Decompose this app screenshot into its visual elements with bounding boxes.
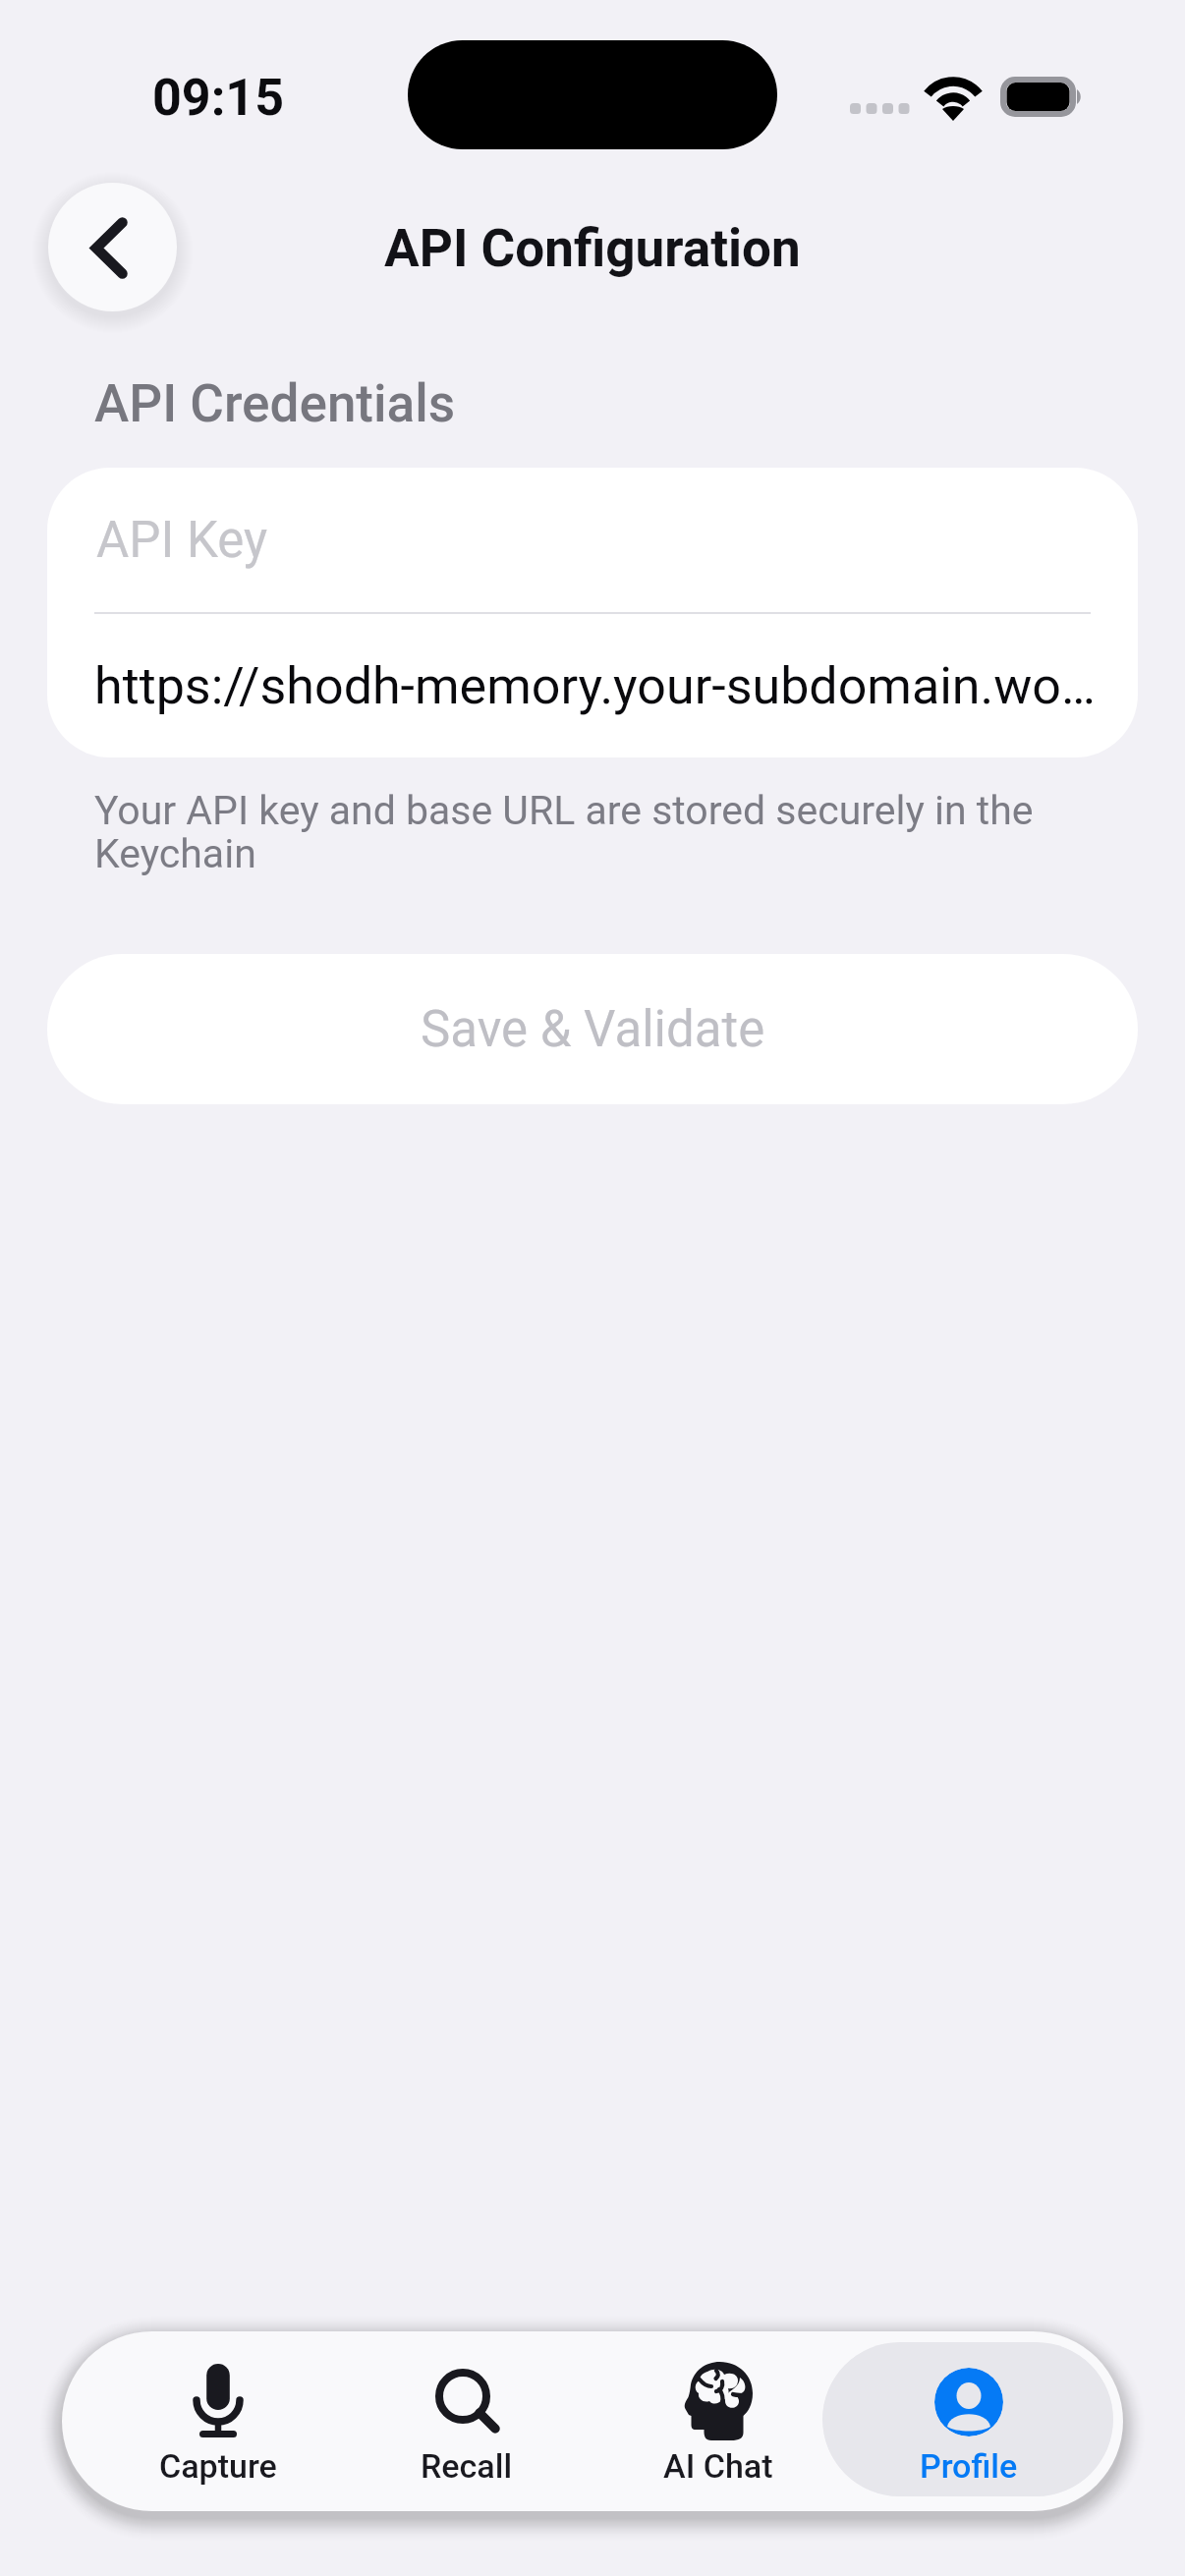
button[interactable]: Recall <box>342 2342 592 2496</box>
staticText: Profile <box>920 2446 1018 2486</box>
button[interactable]: Capture <box>93 2342 343 2496</box>
staticText: Recall <box>421 2446 513 2486</box>
button[interactable]: AI Chat <box>593 2342 843 2496</box>
button[interactable]: Back <box>48 183 177 311</box>
staticText: API Credentials <box>94 373 456 434</box>
button[interactable]: Profile <box>844 2342 1094 2496</box>
staticText: 09:15 <box>152 68 285 128</box>
staticText: API Key <box>96 511 268 570</box>
button[interactable]: Save & Validate <box>47 954 1138 1104</box>
staticText: API Configuration <box>384 218 801 279</box>
staticText: Capture <box>159 2446 277 2486</box>
staticText: https://shodh-memory.your-subdomain.wo… <box>94 656 1096 716</box>
button[interactable]: API Key <box>47 468 1138 612</box>
button[interactable]: https://shodh-memory.your-subdomain.wo… <box>47 614 1138 757</box>
staticText: Save & Validate <box>421 1000 765 1059</box>
staticText: Your API key and base URL are stored sec… <box>94 787 1067 877</box>
staticText: AI Chat <box>663 2446 773 2486</box>
